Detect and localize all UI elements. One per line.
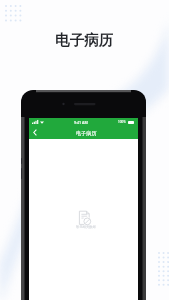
staticText: 100%: [118, 120, 126, 124]
staticText: 电子病历: [55, 31, 114, 49]
staticText: 暂无相关数据: [76, 225, 96, 229]
staticText: 9:41 AM: [74, 120, 88, 125]
button[interactable]: Back: [29, 126, 41, 139]
staticText: 电子病历: [76, 130, 97, 136]
